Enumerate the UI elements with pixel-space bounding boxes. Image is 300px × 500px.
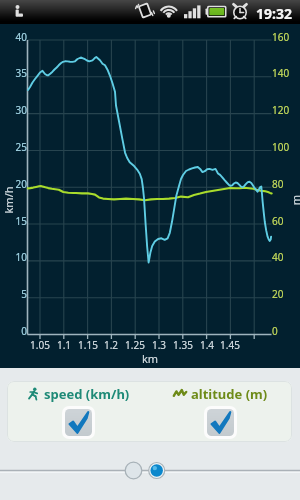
staticText: speed (km/h) bbox=[44, 385, 130, 403]
staticText: 40 bbox=[272, 250, 300, 264]
staticText: 60 bbox=[272, 214, 300, 228]
staticText: 1.05 bbox=[24, 338, 56, 352]
staticText: 1.2 bbox=[95, 338, 127, 352]
staticText: 20 bbox=[272, 287, 300, 301]
button[interactable]: Toggle speed (km/h) bbox=[65, 409, 92, 436]
staticText: 25 bbox=[0, 140, 27, 154]
staticText: 1.4 bbox=[191, 338, 223, 352]
staticText: 5 bbox=[0, 287, 27, 301]
staticText: 160 bbox=[272, 30, 300, 44]
staticText: km/h bbox=[1, 180, 15, 220]
staticText: 80 bbox=[272, 177, 300, 191]
staticText: 1.1 bbox=[48, 338, 80, 352]
staticText: 30 bbox=[0, 103, 27, 117]
staticText: km bbox=[135, 351, 165, 366]
staticText: 1.35 bbox=[167, 338, 199, 352]
button[interactable]: speed (km/h) bbox=[7, 381, 149, 439]
staticText: 1.3 bbox=[143, 338, 175, 352]
staticText: altitude (m) bbox=[191, 385, 268, 403]
staticText: 19:32 bbox=[256, 4, 292, 23]
button[interactable]: altitude (m) bbox=[149, 381, 292, 439]
staticText: 120 bbox=[272, 103, 300, 117]
staticText: 0 bbox=[0, 324, 27, 338]
staticText: 1.45 bbox=[214, 338, 246, 352]
staticText: 100 bbox=[272, 140, 300, 154]
staticText: 10 bbox=[0, 250, 27, 264]
staticText: 1.25 bbox=[119, 338, 151, 352]
staticText: 0 bbox=[272, 324, 300, 338]
staticText: 40 bbox=[0, 30, 27, 44]
staticText: 20 bbox=[0, 177, 27, 191]
button[interactable]: Toggle altitude (m) bbox=[207, 409, 234, 436]
staticText: 1.15 bbox=[72, 338, 104, 352]
staticText: 15 bbox=[0, 214, 27, 228]
staticText: m bbox=[288, 180, 300, 220]
staticText: 140 bbox=[272, 66, 300, 80]
staticText: 35 bbox=[0, 66, 27, 80]
